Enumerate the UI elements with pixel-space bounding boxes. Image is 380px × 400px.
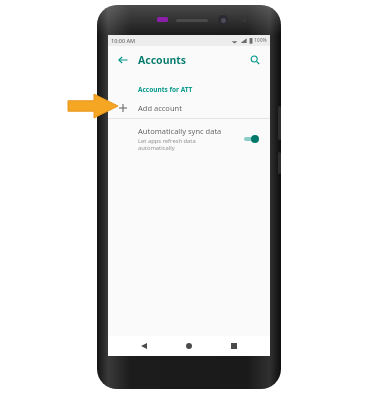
- button[interactable]: Recent apps: [225, 337, 243, 355]
- button[interactable]: Automatically sync data: [108, 119, 270, 159]
- button[interactable]: Add account: [108, 98, 270, 118]
- button[interactable]: Automatically sync data toggle: [243, 132, 261, 146]
- staticText: Add account: [138, 103, 182, 113]
- staticText: Accounts: [138, 53, 187, 67]
- button[interactable]: Back: [114, 51, 132, 69]
- staticText: Accounts for ATT: [138, 85, 193, 94]
- button[interactable]: Back: [135, 337, 153, 355]
- staticText: Automatically sync data: [138, 126, 222, 136]
- staticText: Let apps refresh data automatically: [138, 137, 196, 152]
- other: Pointer to Add account: [68, 93, 118, 119]
- button[interactable]: Search: [246, 51, 264, 69]
- staticText: 10:00 AM: [111, 37, 136, 44]
- staticText: 100%: [254, 37, 267, 44]
- button[interactable]: Home: [180, 337, 198, 355]
